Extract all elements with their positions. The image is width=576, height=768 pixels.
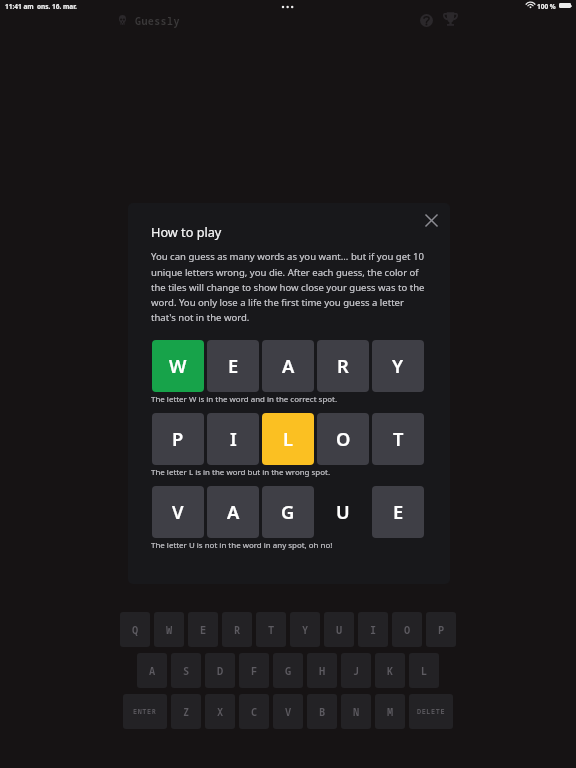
button[interactable]: O xyxy=(392,612,422,647)
button[interactable]: Z xyxy=(171,694,201,729)
staticText: V xyxy=(172,499,184,524)
staticText: X xyxy=(217,705,224,719)
staticText: 11:41 am xyxy=(5,2,34,11)
button[interactable]: R xyxy=(317,340,369,392)
staticText: ENTER xyxy=(133,707,157,716)
button[interactable]: L xyxy=(409,653,439,688)
staticText: L xyxy=(421,664,428,678)
button[interactable]: T xyxy=(372,413,424,465)
button[interactable]: G xyxy=(262,486,314,538)
button[interactable]: M xyxy=(375,694,405,729)
staticText: H xyxy=(319,664,326,678)
staticText: F xyxy=(251,664,258,678)
button[interactable]: S xyxy=(171,653,201,688)
button[interactable]: O xyxy=(317,413,369,465)
staticText: You can guess as many words as you want.… xyxy=(151,250,428,324)
staticText: Z xyxy=(183,705,190,719)
staticText: E xyxy=(228,353,239,378)
staticText: A xyxy=(149,664,156,678)
button[interactable]: B xyxy=(307,694,337,729)
staticText: How to play xyxy=(151,223,222,240)
button[interactable]: J xyxy=(341,653,371,688)
button[interactable]: H xyxy=(307,653,337,688)
button[interactable]: D xyxy=(205,653,235,688)
button[interactable]: A xyxy=(207,486,259,538)
staticText: G xyxy=(285,664,292,678)
staticText: P xyxy=(172,426,184,451)
staticText: T xyxy=(393,426,404,451)
button[interactable]: V xyxy=(152,486,204,538)
staticText: J xyxy=(353,664,360,678)
button[interactable]: P xyxy=(426,612,456,647)
staticText: Guessly xyxy=(135,14,180,28)
button[interactable]: A xyxy=(262,340,314,392)
button[interactable]: L xyxy=(262,413,314,465)
button[interactable]: N xyxy=(341,694,371,729)
staticText: A xyxy=(227,499,240,524)
button[interactable]: U xyxy=(324,612,354,647)
staticText: U xyxy=(336,499,350,524)
button[interactable]: U xyxy=(317,486,369,538)
button[interactable]: G xyxy=(273,653,303,688)
staticText: E xyxy=(393,499,404,524)
button[interactable]: F xyxy=(239,653,269,688)
button[interactable]: K xyxy=(375,653,405,688)
staticText: O xyxy=(336,426,351,451)
button[interactable]: E xyxy=(207,340,259,392)
staticText: S xyxy=(183,664,190,678)
button[interactable]: DELETE xyxy=(409,694,453,729)
staticText: ons. 16. mar. xyxy=(37,2,77,11)
button[interactable]: A xyxy=(137,653,167,688)
staticText: G xyxy=(281,499,295,524)
button[interactable]: P xyxy=(152,413,204,465)
staticText: W xyxy=(169,353,187,378)
staticText: T xyxy=(268,623,275,637)
button[interactable]: R xyxy=(222,612,252,647)
button[interactable]: W xyxy=(152,340,204,392)
button[interactable]: E xyxy=(372,486,424,538)
staticText: V xyxy=(285,705,292,719)
staticText: Y xyxy=(392,353,404,378)
staticText: U xyxy=(336,623,343,637)
button[interactable]: I xyxy=(358,612,388,647)
staticText: The letter W is in the word and in the c… xyxy=(151,394,338,405)
staticText: O xyxy=(404,623,411,637)
staticText: The letter L is in the word but in the w… xyxy=(151,467,331,478)
staticText: K xyxy=(387,664,394,678)
staticText: The letter U is not in the word in any s… xyxy=(151,540,333,551)
staticText: B xyxy=(319,705,326,719)
staticText: DELETE xyxy=(417,707,446,716)
staticText: R xyxy=(337,353,349,378)
button[interactable]: Help xyxy=(415,9,437,31)
button[interactable]: Q xyxy=(120,612,150,647)
button[interactable]: ENTER xyxy=(123,694,167,729)
staticText: Q xyxy=(132,623,139,637)
staticText: M xyxy=(387,705,394,719)
staticText: D xyxy=(217,664,224,678)
staticText: R xyxy=(234,623,241,637)
staticText: L xyxy=(283,426,293,451)
staticText: 100 % xyxy=(537,2,556,11)
button[interactable]: Close xyxy=(420,209,442,231)
button[interactable]: I xyxy=(207,413,259,465)
button[interactable]: C xyxy=(239,694,269,729)
button[interactable]: Y xyxy=(372,340,424,392)
staticText: P xyxy=(438,623,445,637)
button[interactable]: E xyxy=(188,612,218,647)
button[interactable]: Y xyxy=(290,612,320,647)
staticText: Y xyxy=(302,623,309,637)
staticText: N xyxy=(353,705,360,719)
button[interactable]: T xyxy=(256,612,286,647)
staticText: I xyxy=(370,623,377,637)
button[interactable]: W xyxy=(154,612,184,647)
staticText: E xyxy=(200,623,207,637)
button[interactable]: X xyxy=(205,694,235,729)
button[interactable]: Leaderboard xyxy=(439,8,461,30)
staticText: W xyxy=(166,623,173,637)
button[interactable]: V xyxy=(273,694,303,729)
staticText: A xyxy=(282,353,295,378)
staticText: C xyxy=(251,705,258,719)
staticText: I xyxy=(230,426,237,451)
